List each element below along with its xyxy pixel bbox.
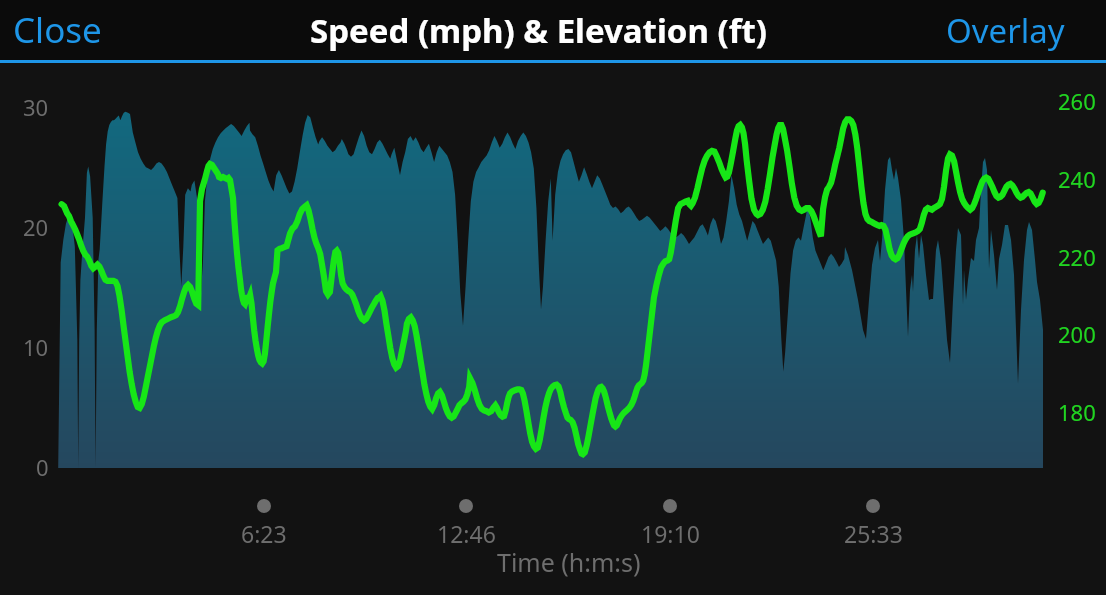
staticText: 20 [23,212,49,242]
staticText: 240 [1058,164,1096,194]
button[interactable]: Close [0,0,115,60]
staticText: 12:46 [437,518,496,549]
staticText: 19:10 [641,518,700,549]
staticText: Overlay [946,8,1065,53]
staticText: 220 [1058,242,1096,272]
staticText: Time (h:m:s) [497,545,641,579]
staticText: 30 [23,92,49,122]
staticText: 10 [23,332,49,362]
staticText: 180 [1058,397,1096,427]
staticText: 200 [1058,319,1096,349]
button[interactable]: Overlay [933,2,1106,59]
staticText: 0 [36,452,49,482]
staticText: Speed (mph) & Elevation (ft) [310,8,767,53]
staticText: Close [13,6,102,54]
staticText: 25:33 [844,518,903,549]
staticText: 6:23 [241,518,287,549]
staticText: 260 [1058,86,1096,116]
